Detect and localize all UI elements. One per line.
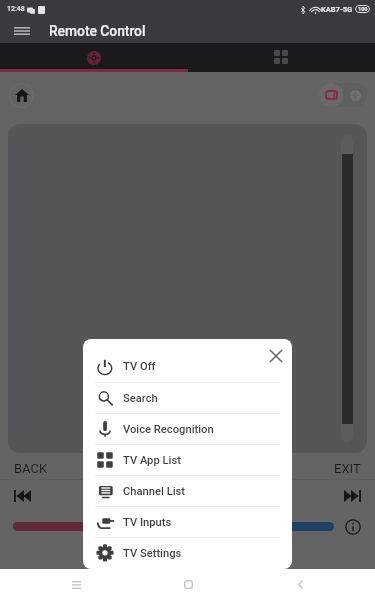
button[interactable]: Previous xyxy=(14,490,31,502)
button[interactable]: TV Off xyxy=(83,351,292,382)
button[interactable]: Recent apps xyxy=(54,569,99,600)
button[interactable]: Voice Recognition xyxy=(83,414,292,444)
staticText: Remote Control xyxy=(49,23,146,39)
staticText: 100 xyxy=(358,6,368,12)
button[interactable]: Close xyxy=(261,341,291,371)
button[interactable]: Touch pad xyxy=(8,124,367,453)
staticText: KAB7-5G xyxy=(321,5,353,14)
button[interactable]: Info xyxy=(345,519,361,535)
button[interactable]: Home xyxy=(9,83,34,108)
staticText: TV App List xyxy=(123,454,181,467)
button[interactable]: TV Inputs xyxy=(83,507,292,537)
button[interactable]: Direction pad tab xyxy=(0,43,187,72)
staticText: Voice Recognition xyxy=(123,423,214,436)
button[interactable]: Channel List xyxy=(83,476,292,506)
button[interactable]: Home xyxy=(166,569,211,600)
staticText: Channel List xyxy=(123,485,186,498)
staticText: Search xyxy=(123,392,158,405)
staticText: TV Settings xyxy=(123,547,182,560)
button[interactable]: Search xyxy=(83,383,292,413)
button[interactable]: EXIT xyxy=(333,461,362,476)
button[interactable]: TV mode xyxy=(319,83,343,107)
button[interactable]: Number pad tab xyxy=(187,43,375,72)
button[interactable]: BACK xyxy=(13,461,49,476)
button[interactable]: TV Settings xyxy=(83,538,292,568)
button[interactable]: TV App List xyxy=(83,445,292,475)
button[interactable]: Progress xyxy=(13,522,334,531)
staticText: TV Off xyxy=(123,360,156,373)
button[interactable]: Back xyxy=(278,569,323,600)
staticText: TV Inputs xyxy=(123,516,172,529)
staticText: 12:48 xyxy=(7,5,25,13)
button[interactable]: Open navigation drawer xyxy=(0,18,43,43)
button[interactable]: Remote mode xyxy=(343,83,367,107)
button[interactable]: Next xyxy=(344,490,361,502)
